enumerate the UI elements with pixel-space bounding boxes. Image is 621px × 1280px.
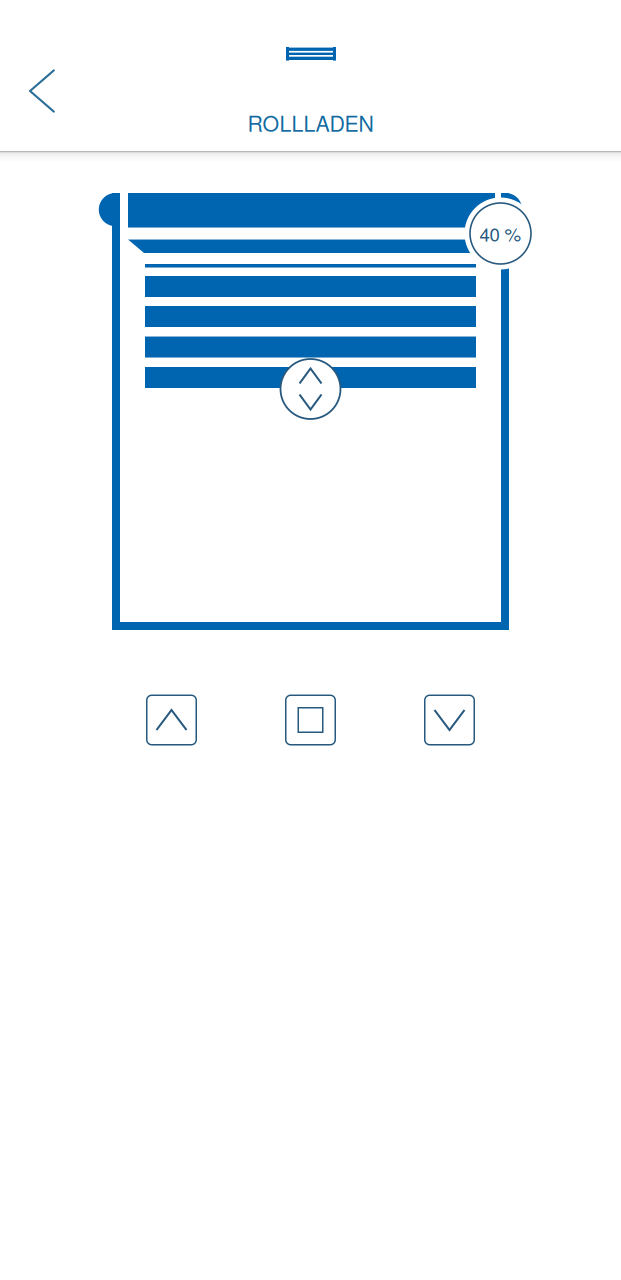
staticText: ROLLLADEN — [247, 107, 373, 138]
button[interactable]: Close — [424, 694, 475, 745]
staticText: 40 % — [479, 220, 521, 247]
button[interactable]: Adjust position — [280, 359, 340, 419]
button[interactable]: Stop — [285, 694, 336, 745]
button[interactable]: Open — [146, 694, 197, 745]
button[interactable]: Back — [18, 57, 88, 127]
